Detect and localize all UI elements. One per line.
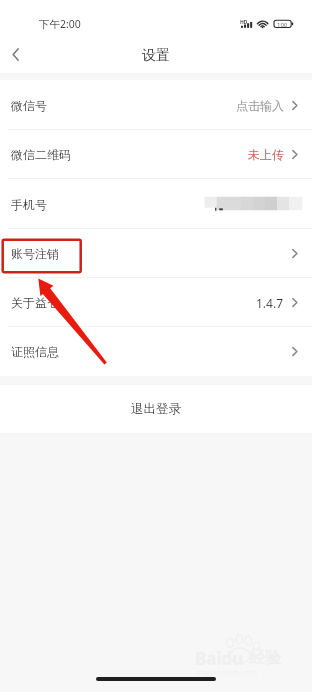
staticText: 1.4.7	[256, 295, 284, 311]
staticText: 下午2:00	[39, 17, 81, 31]
button[interactable]: 关于益仓	[0, 278, 312, 327]
staticText: 证照信息	[11, 344, 59, 359]
staticText: 账号注销	[11, 246, 59, 261]
staticText: 关于益仓	[11, 295, 59, 310]
staticText: 设置	[142, 47, 170, 65]
button[interactable]: 退出登录	[0, 385, 312, 433]
staticText: 未上传	[248, 147, 284, 162]
staticText: Baidu	[195, 647, 244, 670]
button[interactable]: 微信号	[0, 80, 312, 130]
staticText: 微信二维码	[11, 147, 71, 162]
button[interactable]: Back	[5, 44, 25, 64]
button[interactable]: 手机号	[0, 179, 312, 229]
staticText: 退出登录	[131, 401, 181, 417]
button[interactable]: 证照信息	[0, 327, 312, 376]
staticText: 100	[277, 21, 288, 29]
staticText: HD	[240, 19, 248, 26]
button[interactable]: 账号注销	[0, 229, 312, 278]
button[interactable]: 微信二维码	[0, 130, 312, 179]
staticText: jingyan.baidu.com	[197, 668, 258, 678]
staticText: 微信号	[11, 98, 47, 113]
staticText: 经验	[249, 648, 281, 668]
staticText: 点击输入	[236, 98, 284, 113]
staticText: 手机号	[11, 197, 47, 212]
